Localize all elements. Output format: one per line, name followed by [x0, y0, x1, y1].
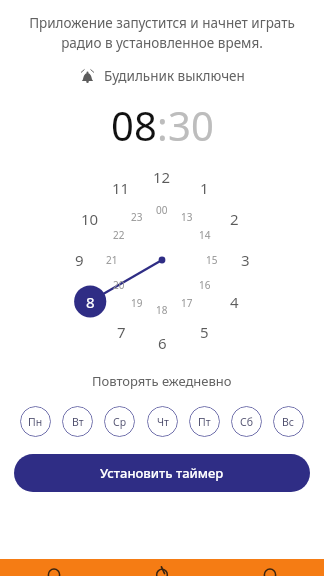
button[interactable]: Пт: [189, 406, 220, 437]
button[interactable]: Чт: [147, 406, 178, 437]
staticText: 20: [113, 278, 125, 292]
staticText: 23: [131, 210, 143, 224]
staticText: Установить таймер: [100, 464, 224, 482]
staticText: 3: [241, 250, 250, 270]
other: Радио: [44, 559, 64, 576]
staticText: 22: [113, 228, 125, 242]
staticText: 21: [106, 253, 118, 267]
other: Будильник: [79, 68, 96, 85]
staticText: Ср: [113, 415, 127, 429]
staticText: 9: [75, 250, 84, 270]
staticText: 6: [158, 333, 167, 353]
staticText: 11: [112, 178, 130, 198]
staticText: :: [157, 98, 168, 152]
staticText: 1: [200, 178, 209, 198]
staticText: 13: [181, 210, 193, 224]
staticText: 8: [86, 292, 95, 312]
staticText: 10: [81, 209, 99, 229]
button[interactable]: Ср: [104, 406, 135, 437]
staticText: Повторять ежедневно: [92, 372, 232, 390]
button[interactable]: Профиль: [216, 559, 324, 576]
staticText: Будильник выключен: [104, 67, 245, 85]
staticText: Приложение запустится и начнет играть ра…: [16, 14, 308, 52]
staticText: Пн: [28, 415, 43, 429]
staticText: 12: [153, 167, 171, 187]
staticText: Сб: [240, 415, 253, 429]
staticText: 14: [199, 228, 211, 242]
staticText: Вс: [282, 415, 295, 429]
staticText: 00: [156, 203, 168, 217]
button[interactable]: Радио: [0, 559, 108, 576]
staticText: 18: [156, 303, 168, 317]
staticText: 4: [230, 292, 239, 312]
button[interactable]: Пн: [20, 406, 51, 437]
staticText: 5: [200, 322, 209, 342]
button[interactable]: Вс: [273, 406, 304, 437]
button[interactable]: Сб: [231, 406, 262, 437]
button[interactable]: Установить таймер: [14, 454, 310, 492]
button[interactable]: Вт: [62, 406, 93, 437]
button[interactable]: 08: [111, 98, 157, 152]
button[interactable]: 30: [168, 98, 214, 152]
button[interactable]: 12: [64, 162, 260, 358]
staticText: Чт: [157, 415, 169, 429]
other: Профиль: [260, 559, 280, 576]
staticText: 15: [206, 253, 218, 267]
staticText: 7: [117, 322, 126, 342]
button[interactable]: Избранное: [108, 559, 216, 576]
staticText: 2: [230, 209, 239, 229]
staticText: 19: [131, 296, 143, 310]
staticText: 17: [181, 296, 193, 310]
staticText: 16: [199, 278, 211, 292]
staticText: Вт: [72, 415, 84, 429]
other: Избранное: [152, 559, 172, 576]
button[interactable]: Будильник: [71, 64, 253, 88]
staticText: Пт: [198, 415, 211, 429]
